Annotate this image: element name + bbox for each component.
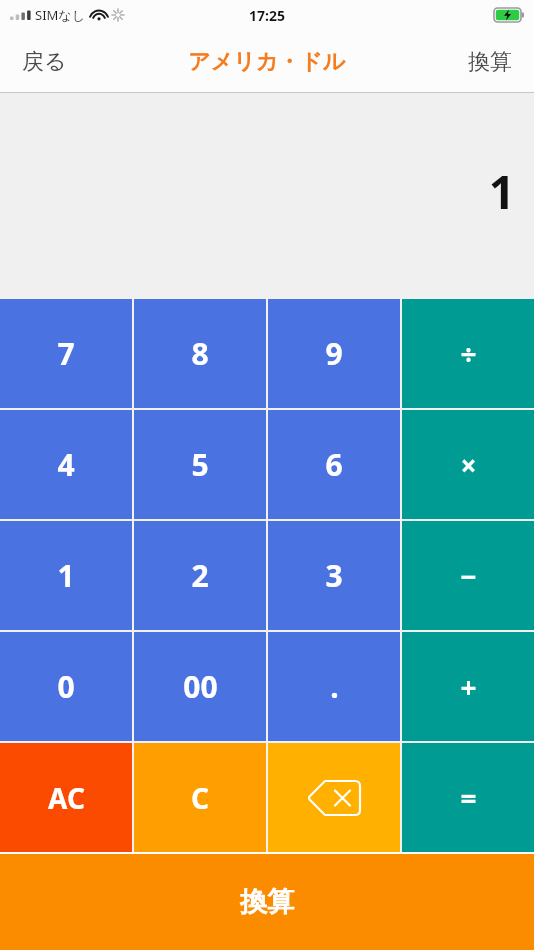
- staticText: 00: [183, 666, 218, 707]
- button[interactable]: 5: [134, 410, 266, 519]
- staticText: .: [330, 666, 339, 707]
- staticText: 6: [325, 444, 343, 485]
- button[interactable]: 0: [0, 632, 132, 741]
- button[interactable]: C: [134, 743, 266, 852]
- button[interactable]: 3: [268, 521, 400, 630]
- staticText: 3: [325, 555, 343, 596]
- staticText: ÷: [460, 335, 477, 373]
- staticText: 1: [57, 555, 75, 596]
- staticText: −: [460, 557, 477, 595]
- button[interactable]: ÷: [402, 299, 534, 408]
- button[interactable]: =: [402, 743, 534, 852]
- button[interactable]: 6: [268, 410, 400, 519]
- staticText: 4: [57, 444, 75, 485]
- staticText: +: [460, 668, 477, 706]
- button[interactable]: .: [268, 632, 400, 741]
- staticText: AC: [48, 779, 85, 817]
- staticText: =: [460, 779, 477, 817]
- button[interactable]: +: [402, 632, 534, 741]
- staticText: C: [191, 779, 209, 817]
- staticText: 換算: [468, 48, 512, 76]
- staticText: ×: [460, 446, 477, 484]
- staticText: 戻る: [22, 48, 67, 76]
- button[interactable]: 2: [134, 521, 266, 630]
- staticText: 0: [57, 666, 75, 707]
- staticText: 8: [191, 333, 209, 374]
- button[interactable]: 8: [134, 299, 266, 408]
- button[interactable]: 換算: [450, 30, 530, 93]
- staticText: 7: [57, 333, 75, 374]
- button[interactable]: 換算: [0, 854, 534, 950]
- button[interactable]: −: [402, 521, 534, 630]
- button[interactable]: 戻る: [4, 30, 85, 93]
- button[interactable]: 1: [0, 521, 132, 630]
- button[interactable]: 4: [0, 410, 132, 519]
- staticText: 17:25: [249, 6, 285, 25]
- staticText: SIMなし: [35, 6, 85, 24]
- button[interactable]: Backspace: [268, 743, 400, 852]
- staticText: アメリカ・ドル: [188, 48, 346, 76]
- staticText: 9: [325, 333, 343, 374]
- staticText: 5: [191, 444, 209, 485]
- button[interactable]: 00: [134, 632, 266, 741]
- button[interactable]: ×: [402, 410, 534, 519]
- staticText: 1: [488, 160, 515, 223]
- staticText: 換算: [240, 885, 294, 919]
- button[interactable]: AC: [0, 743, 132, 852]
- button[interactable]: 9: [268, 299, 400, 408]
- staticText: 2: [191, 555, 209, 596]
- button[interactable]: 7: [0, 299, 132, 408]
